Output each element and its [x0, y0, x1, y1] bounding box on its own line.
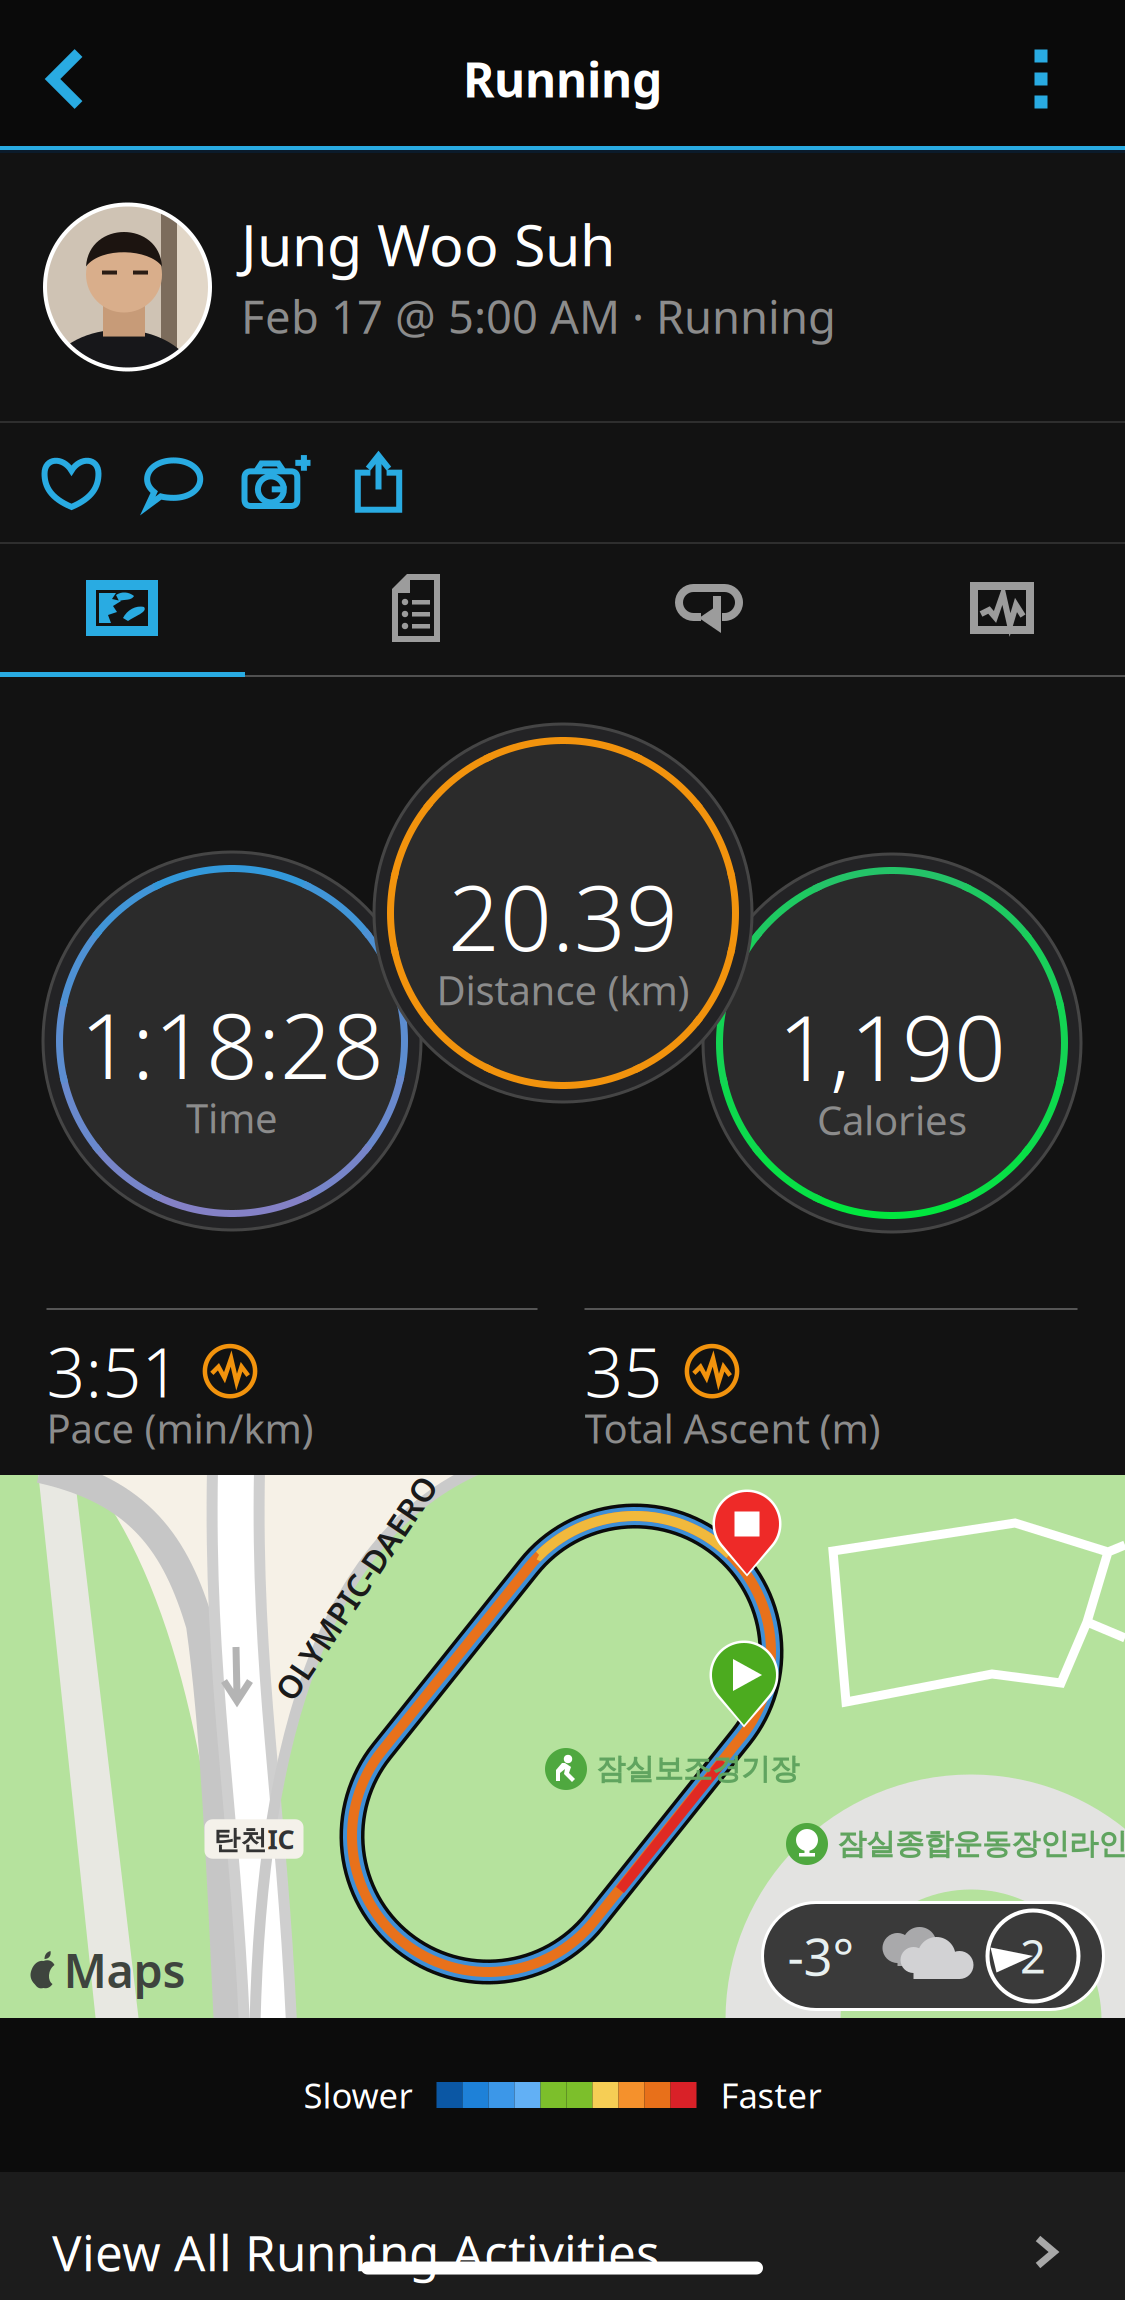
staticText: Maps: [63, 1939, 185, 2001]
button[interactable]: Charts: [882, 544, 1122, 672]
button[interactable]: Laps: [589, 544, 829, 672]
button[interactable]: Details: [296, 544, 536, 672]
staticText: OLYMPIC-DAERO: [225, 1567, 487, 1609]
button[interactable]: Back: [0, 0, 131, 146]
staticText: Time: [186, 1091, 278, 1144]
staticText: 1:18:28: [80, 984, 384, 1104]
staticText: 3:51: [46, 1326, 180, 1416]
button[interactable]: Share: [332, 423, 425, 542]
button[interactable]: More options: [957, 0, 1125, 146]
staticText: Calories: [817, 1093, 967, 1146]
staticText: 1,190: [778, 986, 1006, 1106]
button[interactable]: Like: [21, 423, 122, 542]
staticText: Total Ascent (m): [584, 1401, 880, 1454]
staticText: 탄천IC: [213, 1821, 294, 1857]
staticText: Faster: [720, 2072, 821, 2118]
staticText: Pace (min/km): [46, 1401, 313, 1454]
staticText: Jung Woo Suh: [241, 206, 615, 282]
staticText: -3°: [787, 1922, 854, 1990]
staticText: Distance (km): [436, 963, 689, 1016]
button[interactable]: Map: [2, 544, 242, 672]
staticText: 2: [1020, 1926, 1046, 1986]
button[interactable]: View All Running Activities: [0, 2172, 1125, 2300]
staticText: Feb 17 @ 5:00 AM · Running: [241, 286, 836, 346]
staticText: 20.39: [448, 856, 678, 976]
staticText: 35: [584, 1326, 662, 1416]
staticText: View All Running Activities: [52, 2219, 660, 2285]
button[interactable]: Comment: [122, 423, 223, 542]
button[interactable]: Add photo: [223, 423, 332, 542]
staticText: Slower: [303, 2072, 412, 2118]
staticText: 잠실보조경기장: [596, 1751, 799, 1787]
staticText: 잠실종합운동장인라인: [837, 1826, 1125, 1862]
staticText: Running: [463, 47, 662, 111]
